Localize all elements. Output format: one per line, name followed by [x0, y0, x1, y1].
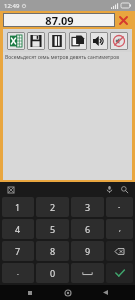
button[interactable]: Copy — [69, 32, 87, 50]
staticText: 4 — [15, 223, 21, 235]
button[interactable]: , — [106, 219, 133, 239]
button[interactable]: Search — [118, 183, 130, 195]
staticText: - — [118, 202, 121, 212]
button[interactable]: Speak result — [90, 32, 108, 50]
button[interactable]: Save — [27, 32, 45, 50]
staticText: , — [119, 224, 121, 234]
staticText: 7 — [15, 245, 21, 257]
button[interactable]: 8 — [36, 241, 69, 261]
button[interactable]: 0 — [36, 263, 69, 283]
staticText: 5 — [50, 223, 56, 235]
staticText: 2 — [50, 201, 56, 213]
staticText: . — [17, 268, 19, 278]
button[interactable]: 87.09 — [3, 13, 115, 27]
staticText: 87.09 — [45, 13, 74, 27]
staticText: 9 — [85, 245, 91, 257]
button[interactable]: Clear — [115, 13, 132, 27]
button[interactable]: Emoji keyboard — [5, 184, 16, 195]
staticText: 8 — [50, 245, 56, 257]
staticText: 3 — [85, 201, 91, 213]
staticText: Восемьдесят семь метров девять сантиметр… — [5, 54, 119, 61]
staticText: 6 — [85, 223, 91, 235]
button[interactable]: Open document — [48, 32, 66, 50]
button[interactable]: 6 — [71, 219, 104, 239]
staticText: 12:49 — [4, 2, 20, 10]
staticText: 0 — [50, 267, 56, 279]
button[interactable]: Done — [106, 263, 133, 283]
button[interactable]: Backspace — [106, 241, 133, 261]
button[interactable]: Mute — [110, 32, 128, 50]
button[interactable]: Export to Excel — [7, 32, 25, 50]
button[interactable]: 2 — [36, 197, 69, 217]
button[interactable]: 5 — [36, 219, 69, 239]
button[interactable]: Back — [97, 285, 113, 300]
button[interactable]: Space — [71, 263, 104, 283]
button[interactable]: 4 — [2, 219, 34, 239]
button[interactable]: 3 — [71, 197, 104, 217]
button[interactable]: Recents — [22, 285, 38, 300]
button[interactable]: 9 — [71, 241, 104, 261]
button[interactable]: 1 — [2, 197, 34, 217]
button[interactable]: 7 — [2, 241, 34, 261]
button[interactable]: - — [106, 197, 133, 217]
staticText: 1 — [15, 201, 21, 213]
button[interactable]: Home — [60, 285, 76, 300]
button[interactable]: Voice input — [103, 183, 115, 195]
button[interactable]: . — [2, 263, 34, 283]
